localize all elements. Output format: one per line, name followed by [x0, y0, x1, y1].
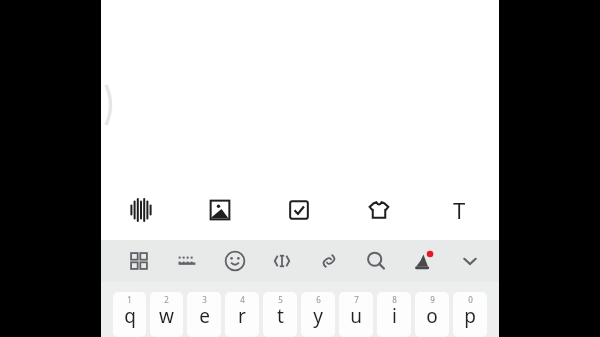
button[interactable]: Collapse — [446, 240, 493, 282]
button[interactable]: Link — [305, 240, 352, 282]
staticText: p — [464, 303, 476, 329]
button[interactable]: 5 — [263, 292, 297, 337]
button[interactable]: Effects — [399, 240, 446, 282]
staticText: 9 — [430, 294, 435, 305]
button[interactable]: 7 — [339, 292, 373, 337]
button[interactable]: 1 — [113, 292, 146, 337]
button[interactable]: 6 — [301, 292, 335, 337]
button[interactable]: 4 — [225, 292, 259, 337]
button[interactable]: Sticker — [339, 180, 419, 240]
staticText: 8 — [392, 294, 397, 305]
button[interactable]: Translate — [258, 240, 305, 282]
button[interactable]: Keyboard — [163, 240, 211, 282]
button[interactable]: 3 — [187, 292, 221, 337]
staticText: i — [392, 303, 397, 329]
button[interactable]: Checklist — [259, 180, 339, 240]
button[interactable]: Formatting — [419, 180, 499, 240]
staticText: 5 — [278, 294, 283, 305]
staticText: u — [350, 303, 362, 329]
button[interactable]: Photo — [180, 180, 259, 240]
staticText: 7 — [354, 294, 359, 305]
button[interactable]: 2 — [150, 292, 183, 337]
staticText: 4 — [240, 294, 245, 305]
staticText: o — [426, 303, 438, 329]
button[interactable]: 8 — [377, 292, 411, 337]
button[interactable]: 0 — [453, 292, 487, 337]
staticText: r — [238, 303, 246, 329]
button[interactable]: Voice message — [101, 180, 180, 240]
button[interactable]: Search — [352, 240, 399, 282]
staticText: 2 — [164, 294, 169, 305]
staticText: 3 — [202, 294, 207, 305]
button[interactable]: 9 — [415, 292, 449, 337]
staticText: e — [199, 303, 210, 329]
staticText: w — [159, 303, 174, 329]
staticText: q — [124, 303, 136, 329]
staticText: t — [277, 303, 284, 329]
staticText: T — [453, 195, 466, 225]
staticText: 0 — [468, 294, 473, 305]
staticText: y — [313, 303, 323, 329]
staticText: 6 — [316, 294, 321, 305]
staticText: 1 — [127, 294, 132, 305]
button[interactable]: Apps — [115, 240, 163, 282]
button[interactable]: Emoji — [211, 240, 258, 282]
